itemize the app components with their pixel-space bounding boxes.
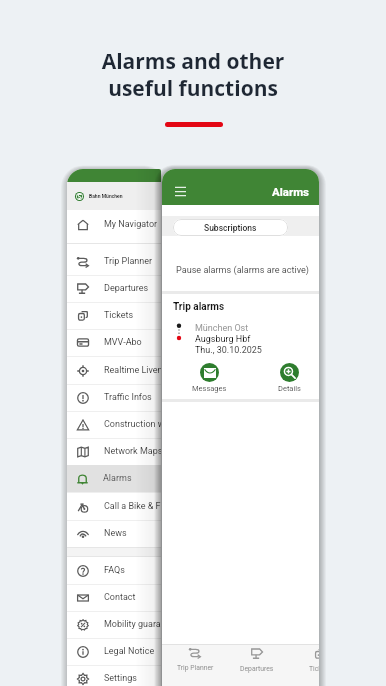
button[interactable]: Subscriptions — [173, 219, 288, 236]
staticText: Legal Notice — [104, 646, 155, 657]
staticText: Trip Planner — [104, 256, 153, 267]
staticText: Realtime Livemap — [104, 365, 161, 376]
button[interactable]: Alarms — [67, 465, 161, 492]
staticText: My Navigator — [104, 219, 158, 230]
button[interactable]: Realtime Livemap — [67, 357, 161, 384]
staticText: FAQs — [104, 565, 125, 576]
button[interactable]: Mobility guarantee — [67, 611, 161, 638]
staticText: Subscriptions — [204, 223, 257, 233]
button[interactable]: News — [67, 520, 161, 547]
button[interactable]: Open navigation menu — [173, 186, 188, 197]
staticText: Settings — [104, 673, 137, 684]
staticText: Contact — [104, 592, 136, 603]
button[interactable]: Call a Bike & Flinkster — [67, 493, 161, 520]
staticText: Traffic Infos — [104, 392, 152, 403]
button[interactable]: Details — [270, 363, 308, 393]
button[interactable]: Construction work — [67, 411, 161, 438]
button[interactable]: Tickets — [67, 302, 161, 329]
button[interactable]: Traffic Infos — [67, 384, 161, 411]
staticText: Call a Bike & Flinkster — [104, 501, 161, 512]
button[interactable]: MVV-Abo — [67, 329, 161, 356]
staticText: Departures — [240, 665, 274, 673]
staticText: News — [104, 528, 127, 539]
button[interactable]: My Navigator — [67, 211, 161, 238]
button[interactable]: Tickets — [294, 648, 319, 673]
staticText: Augsburg Hbf — [195, 334, 251, 345]
button[interactable]: Pause alarms (alarms are active) — [162, 236, 319, 292]
staticText: Thu., 30.10.2025 — [195, 345, 262, 356]
staticText: Network Maps — [104, 446, 161, 457]
button[interactable]: Trip Planner — [169, 648, 221, 672]
staticText: Mobility guarantee — [104, 619, 161, 630]
button[interactable]: Departures — [67, 275, 161, 302]
staticText: München Ost — [195, 323, 249, 334]
staticText: Alarms — [103, 473, 132, 484]
button[interactable]: Trip Planner — [67, 248, 161, 275]
staticText: Departures — [104, 283, 149, 294]
button[interactable]: Departures — [231, 648, 283, 673]
staticText: Trip Planner — [177, 664, 214, 672]
staticText: Bahn München — [89, 193, 123, 199]
button[interactable]: FAQs — [67, 557, 161, 584]
staticText: Tickets — [104, 310, 134, 321]
button[interactable]: Contact — [67, 584, 161, 611]
staticText: Alarms — [272, 185, 310, 198]
staticText: Alarms and other useful functions — [0, 47, 386, 102]
button[interactable]: Network Maps — [67, 438, 161, 465]
staticText: Trip alarms — [173, 301, 225, 313]
staticText: Tickets — [309, 665, 319, 673]
staticText: Construction work — [104, 419, 161, 430]
staticText: Details — [278, 384, 301, 393]
staticText: MVV-Abo — [104, 337, 142, 348]
button[interactable]: Messages — [190, 363, 228, 393]
button[interactable]: Settings — [67, 665, 161, 686]
staticText: Pause alarms (alarms are active) — [176, 265, 310, 276]
staticText: Messages — [192, 384, 227, 393]
button[interactable]: Legal Notice — [67, 638, 161, 665]
